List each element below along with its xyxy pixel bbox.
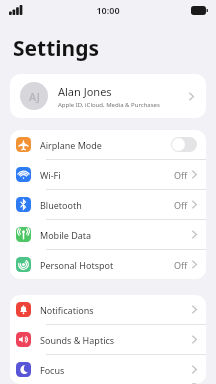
staticText: Airplane Mode [40, 139, 171, 151]
staticText: Sounds & Haptics [40, 334, 192, 346]
button[interactable]: Focus [10, 355, 206, 384]
button[interactable]: Personal Hotspot [10, 250, 206, 279]
staticText: 10:00 [96, 4, 120, 16]
staticText: Apple ID, iCloud, Media & Purchases [58, 101, 160, 109]
staticText: Off [174, 199, 188, 211]
button[interactable]: AJ [10, 74, 206, 118]
button[interactable]: Airplane Mode [10, 130, 206, 159]
button[interactable]: Mobile Data [10, 220, 206, 249]
staticText: Settings [13, 34, 100, 63]
staticText: Off [174, 259, 188, 271]
button[interactable]: Airplane Mode toggle [171, 137, 197, 152]
staticText: Personal Hotspot [40, 259, 174, 271]
staticText: Wi-Fi [40, 169, 174, 181]
staticText: Notifications [40, 304, 192, 316]
staticText: Off [174, 169, 188, 181]
staticText: Mobile Data [40, 229, 192, 241]
button[interactable]: Sounds & Haptics [10, 325, 206, 354]
staticText: AJ [29, 89, 40, 104]
button[interactable]: Notifications [10, 295, 206, 324]
staticText: Focus [40, 364, 192, 376]
staticText: Bluetooth [40, 199, 174, 211]
button[interactable]: Bluetooth [10, 190, 206, 219]
button[interactable]: Wi-Fi [10, 160, 206, 189]
staticText: Alan Jones [58, 84, 112, 99]
